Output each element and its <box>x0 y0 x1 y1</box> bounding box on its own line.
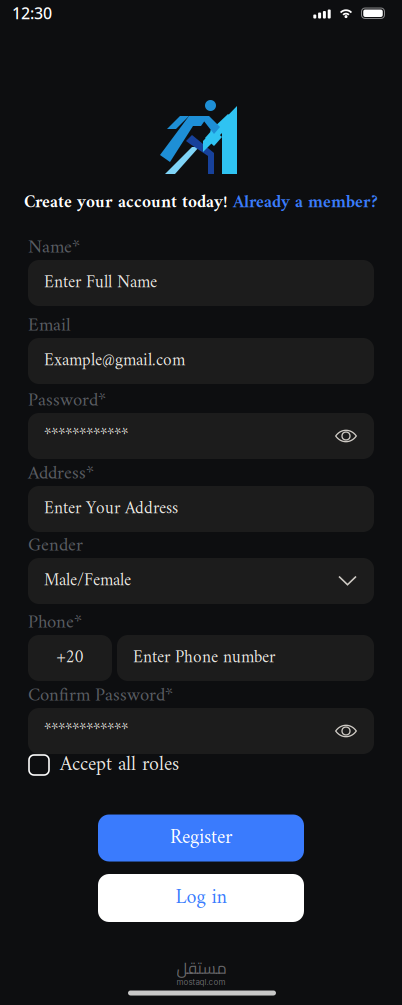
button[interactable]: Accept all roles <box>29 747 179 783</box>
staticText: Enter Your Address <box>44 494 178 524</box>
staticText: Log in <box>175 880 226 916</box>
button[interactable]: +20 <box>28 635 112 681</box>
staticText: Address* <box>28 458 94 490</box>
staticText: Name* <box>28 232 80 264</box>
staticText: +20 <box>56 643 83 673</box>
staticText: Phone* <box>28 607 82 639</box>
button[interactable]: ************ <box>28 708 374 754</box>
staticText: Enter Phone number <box>133 643 275 673</box>
button[interactable]: Enter Your Address <box>28 486 374 532</box>
button[interactable]: Male/Female <box>28 558 374 604</box>
button[interactable]: ************ <box>28 413 374 459</box>
button[interactable]: Enter Full Name <box>28 260 374 306</box>
staticText: ************ <box>44 421 128 451</box>
staticText: Create your account today! <box>24 188 228 218</box>
staticText: mostaql.com <box>176 977 225 987</box>
button[interactable]: Register <box>98 814 304 861</box>
staticText: مستقل <box>176 953 226 983</box>
staticText: Password* <box>28 385 106 417</box>
staticText: Example@gmail.com <box>44 346 185 376</box>
staticText: Gender <box>28 530 83 562</box>
button[interactable]: Already a member? <box>233 188 378 218</box>
button[interactable]: Enter Phone number <box>117 635 374 681</box>
staticText: Email <box>28 310 71 342</box>
staticText: ************ <box>44 716 128 746</box>
staticText: 12:30 <box>12 2 52 24</box>
staticText: Accept all roles <box>60 747 179 783</box>
staticText: Register <box>170 820 232 856</box>
staticText: Enter Full Name <box>44 268 157 298</box>
button[interactable]: Example@gmail.com <box>28 338 374 384</box>
button[interactable]: Log in <box>98 874 304 922</box>
staticText: Confirm Password* <box>28 680 173 712</box>
staticText: Already a member? <box>233 188 378 218</box>
staticText: Male/Female <box>44 566 131 596</box>
